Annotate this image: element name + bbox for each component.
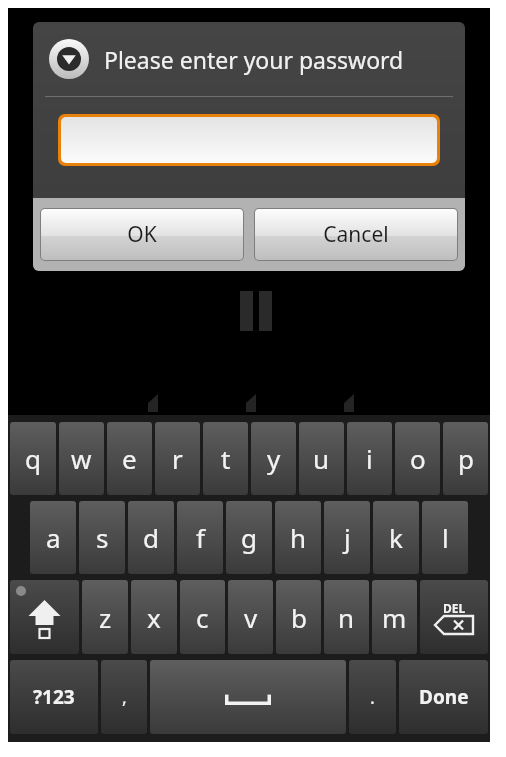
staticText: r	[172, 441, 183, 476]
button[interactable]: k	[373, 501, 419, 574]
staticText: l	[442, 520, 449, 555]
button[interactable]: a	[30, 501, 76, 574]
staticText: a	[46, 520, 61, 555]
staticText: DEL	[443, 600, 466, 616]
button[interactable]: v	[228, 580, 273, 654]
button[interactable]: l	[422, 501, 468, 574]
button[interactable]: x	[131, 580, 177, 654]
staticText: z	[99, 600, 112, 635]
button[interactable]: b	[276, 580, 321, 654]
button[interactable]: h	[275, 501, 321, 574]
staticText: p	[458, 441, 474, 476]
button[interactable]: f	[177, 501, 223, 574]
staticText: q	[25, 441, 41, 476]
staticText: m	[382, 600, 407, 635]
button[interactable]	[61, 117, 437, 163]
button[interactable]: u	[299, 422, 344, 495]
button[interactable]: m	[372, 580, 417, 654]
button[interactable]: s	[79, 501, 125, 574]
staticText: c	[196, 600, 209, 635]
button[interactable]: Delete	[420, 580, 488, 654]
button[interactable]: y	[251, 422, 296, 495]
button[interactable]: j	[324, 501, 370, 574]
button[interactable]: z	[82, 580, 128, 654]
button[interactable]: t	[203, 422, 248, 495]
button[interactable]: OK	[41, 209, 243, 260]
staticText: e	[122, 441, 137, 476]
staticText: ?123	[33, 684, 75, 710]
staticText: ,	[122, 685, 127, 710]
staticText: f	[196, 520, 205, 555]
button[interactable]: w	[59, 422, 104, 495]
button[interactable]: ,	[101, 660, 147, 734]
staticText: OK	[127, 220, 157, 249]
staticText: n	[338, 600, 355, 635]
button[interactable]: Done	[399, 660, 488, 734]
staticText: t	[221, 441, 231, 476]
button[interactable]: g	[226, 501, 272, 574]
staticText: o	[410, 441, 426, 476]
staticText: u	[313, 441, 330, 476]
button[interactable]: Cancel	[255, 209, 457, 260]
staticText: d	[143, 520, 159, 555]
button[interactable]: q	[10, 422, 56, 495]
button[interactable]: .	[349, 660, 396, 734]
button[interactable]: e	[107, 422, 152, 495]
button[interactable]: d	[128, 501, 174, 574]
staticText: h	[290, 520, 307, 555]
button[interactable]: i	[347, 422, 392, 495]
staticText: s	[96, 520, 109, 555]
staticText: Cancel	[323, 220, 389, 249]
button[interactable]: o	[395, 422, 440, 495]
button[interactable]: Shift	[10, 580, 79, 654]
staticText: j	[344, 520, 351, 555]
staticText: v	[244, 600, 258, 635]
button[interactable]: n	[324, 580, 369, 654]
staticText: Done	[419, 684, 469, 710]
staticText: k	[389, 520, 403, 555]
staticText: b	[291, 600, 307, 635]
staticText: .	[370, 685, 375, 710]
staticText: g	[241, 520, 257, 555]
staticText: w	[71, 441, 92, 476]
button[interactable]: r	[155, 422, 200, 495]
button[interactable]: Space	[150, 660, 346, 734]
button[interactable]: p	[443, 422, 488, 495]
button[interactable]: c	[180, 580, 225, 654]
staticText: Please enter your password	[104, 44, 404, 75]
staticText: x	[147, 600, 161, 635]
staticText: i	[366, 441, 373, 476]
button[interactable]: ?123	[10, 660, 98, 734]
staticText: y	[267, 441, 281, 476]
